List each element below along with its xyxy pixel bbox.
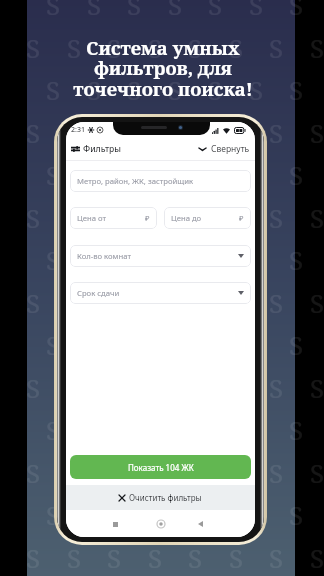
staticText: S	[168, 242, 183, 277]
staticText: Цена от	[77, 213, 106, 223]
staticText: S	[188, 540, 203, 575]
staticText: S	[148, 540, 163, 575]
staticText: S	[67, 30, 82, 65]
staticText: S	[87, 72, 102, 107]
staticText: S	[289, 0, 304, 22]
staticText: S	[148, 115, 163, 150]
button[interactable]: Свернуть	[198, 141, 250, 157]
staticText: ₽	[239, 213, 244, 223]
staticText: S	[168, 0, 183, 22]
staticText: S	[310, 370, 324, 405]
staticText: S	[107, 455, 122, 490]
staticText: S	[310, 285, 324, 320]
staticText: S	[46, 242, 61, 277]
staticText: S	[188, 285, 203, 320]
staticText: S	[249, 157, 264, 192]
button[interactable]: Показать 104 ЖК	[70, 455, 251, 479]
staticText: S	[46, 0, 61, 22]
staticText: S	[148, 455, 163, 490]
staticText: S	[188, 200, 203, 235]
staticText: S	[46, 157, 61, 192]
staticText: S	[229, 455, 244, 490]
staticText: S	[107, 285, 122, 320]
button[interactable]: Метро, район, ЖК, застройщик	[70, 170, 251, 192]
staticText: S	[249, 72, 264, 107]
staticText: S	[188, 30, 203, 65]
staticText: S	[148, 200, 163, 235]
staticText: S	[26, 200, 41, 235]
staticText: Очистить фильтры	[129, 492, 202, 503]
button[interactable]: Recents	[107, 516, 123, 532]
staticText: S	[26, 285, 41, 320]
staticText: ₽	[145, 213, 150, 223]
staticText: S	[148, 285, 163, 320]
staticText: S	[46, 327, 61, 362]
staticText: S	[289, 327, 304, 362]
staticText: Срок сдачи	[77, 288, 120, 298]
staticText: S	[269, 540, 284, 575]
button[interactable]: Back	[192, 516, 208, 532]
staticText: S	[26, 455, 41, 490]
staticText: S	[26, 540, 41, 575]
button[interactable]: Цена до	[164, 207, 251, 229]
staticText: S	[127, 497, 142, 532]
staticText: S	[249, 242, 264, 277]
staticText: S	[208, 0, 223, 22]
staticText: S	[229, 540, 244, 575]
staticText: S	[168, 72, 183, 107]
staticText: S	[26, 115, 41, 150]
staticText: S	[87, 242, 102, 277]
staticText: Показать 104 ЖК	[128, 462, 194, 473]
staticText: Система умных фильтров, для точечного по…	[73, 35, 253, 101]
staticText: Свернуть	[211, 143, 250, 155]
staticText: S	[269, 285, 284, 320]
staticText: S	[310, 540, 324, 575]
button[interactable]: Home	[153, 516, 169, 532]
staticText: S	[107, 115, 122, 150]
staticText: S	[269, 115, 284, 150]
staticText: S	[127, 0, 142, 22]
staticText: Цена до	[171, 213, 202, 223]
staticText: S	[26, 30, 41, 65]
button[interactable]: Фильтры	[71, 141, 121, 157]
staticText: S	[208, 157, 223, 192]
staticText: S	[107, 200, 122, 235]
staticText: S	[188, 455, 203, 490]
staticText: Кол-во комнат	[77, 251, 131, 261]
staticText: S	[26, 370, 41, 405]
staticText: S	[289, 242, 304, 277]
staticText: S	[87, 157, 102, 192]
staticText: S	[249, 412, 264, 447]
staticText: S	[208, 242, 223, 277]
staticText: S	[310, 30, 324, 65]
staticText: 2:31	[71, 125, 85, 135]
staticText: S	[229, 115, 244, 150]
staticText: S	[168, 497, 183, 532]
staticText: S	[249, 0, 264, 22]
button[interactable]: Очистить фильтры	[66, 485, 255, 510]
staticText: S	[67, 200, 82, 235]
button[interactable]: Цена от	[70, 207, 157, 229]
staticText: S	[310, 455, 324, 490]
staticText: S	[310, 115, 324, 150]
button[interactable]: Кол-во комнат	[70, 245, 251, 267]
staticText: S	[289, 157, 304, 192]
staticText: S	[229, 30, 244, 65]
staticText: S	[310, 200, 324, 235]
staticText: S	[208, 497, 223, 532]
staticText: S	[289, 72, 304, 107]
staticText: S	[127, 157, 142, 192]
staticText: S	[67, 540, 82, 575]
button[interactable]: Срок сдачи	[70, 282, 251, 304]
staticText: S	[46, 412, 61, 447]
staticText: Метро, район, ЖК, застройщик	[77, 176, 194, 186]
staticText: S	[229, 285, 244, 320]
staticText: S	[289, 412, 304, 447]
staticText: S	[127, 72, 142, 107]
